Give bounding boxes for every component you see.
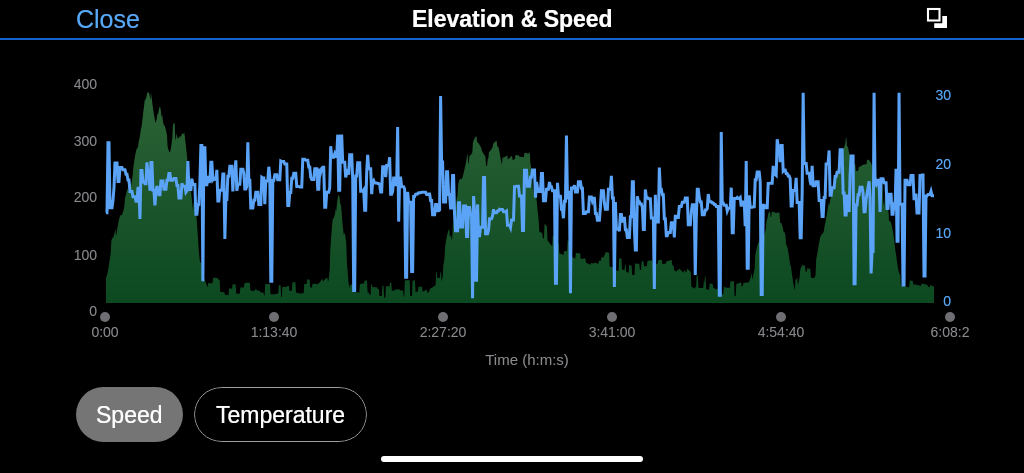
staticText: 4:54:40	[721, 324, 841, 340]
staticText: 10	[921, 225, 951, 241]
staticText: Temperature	[216, 402, 346, 428]
staticText: 20	[921, 156, 951, 172]
staticText: 2:27:20	[383, 324, 503, 340]
button[interactable]: Duplicate	[918, 0, 958, 38]
staticText: 300	[58, 133, 97, 149]
staticText: 400	[58, 76, 97, 92]
staticText: Close	[76, 5, 140, 33]
staticText: 30	[921, 87, 951, 103]
staticText: Time (h:m:s)	[427, 351, 627, 368]
staticText: 0	[58, 303, 97, 319]
staticText: 6:08:2	[890, 324, 1010, 340]
staticText: 0	[921, 293, 951, 309]
staticText: 0:00	[45, 324, 165, 340]
staticText: 200	[58, 189, 97, 205]
button[interactable]: Speed	[76, 387, 183, 442]
staticText: 1:13:40	[214, 324, 334, 340]
staticText: Elevation & Speed	[412, 6, 613, 32]
staticText: Speed	[96, 402, 163, 428]
button[interactable]: Close	[76, 5, 140, 33]
staticText: 100	[58, 247, 97, 263]
staticText: 3:41:00	[552, 324, 672, 340]
button[interactable]: Temperature	[194, 387, 367, 442]
